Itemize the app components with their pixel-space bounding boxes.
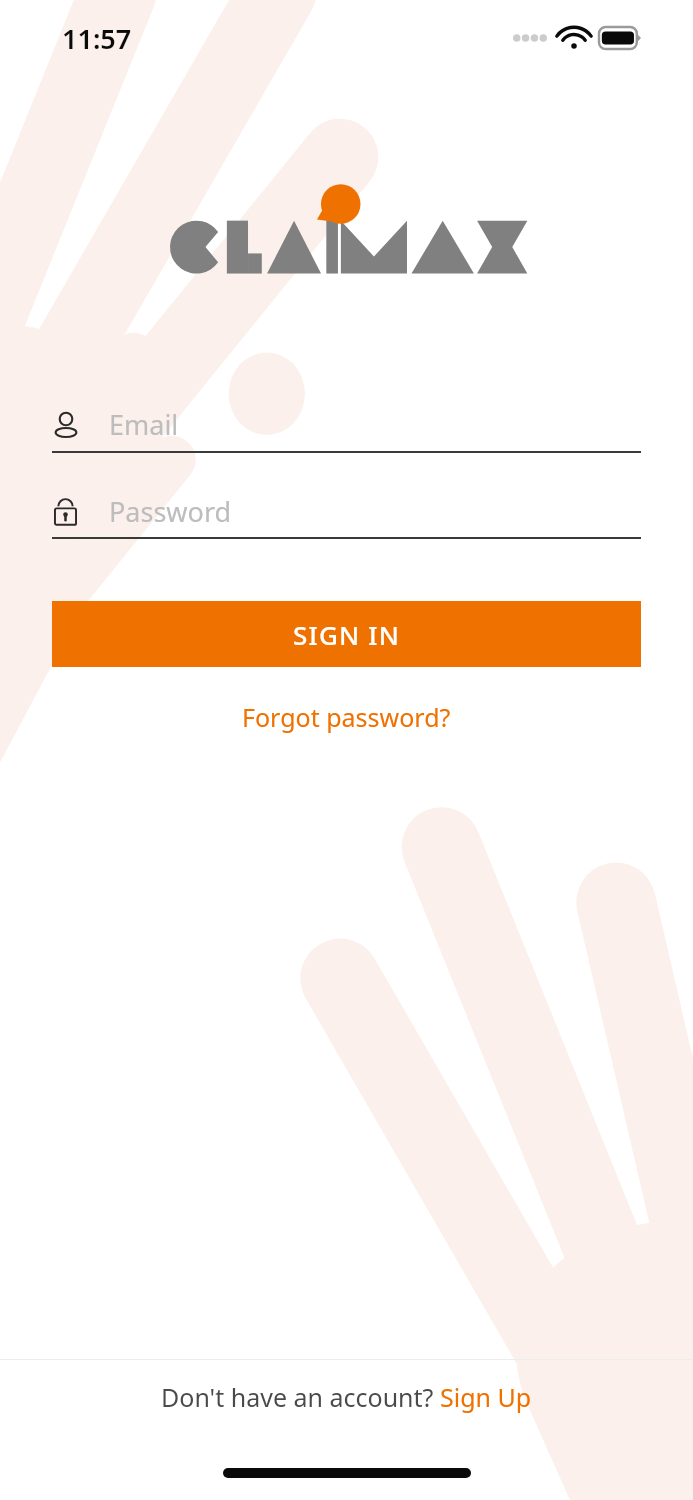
staticText: Sign Up (440, 1380, 532, 1414)
staticText: Password (109, 493, 232, 530)
staticText: Don't have an account? (161, 1380, 440, 1414)
button[interactable]: Sign Up (440, 1380, 532, 1414)
staticText: 11:57 (62, 20, 132, 57)
other: Home indicator (223, 1468, 471, 1478)
staticText: Forgot password? (242, 700, 451, 734)
staticText: Email (109, 406, 179, 443)
button[interactable]: Password (52, 486, 641, 537)
button[interactable]: Forgot password? (228, 693, 465, 741)
staticText: SIGN IN (293, 617, 401, 652)
button[interactable]: SIGN IN (52, 601, 641, 667)
button[interactable]: Email (52, 398, 641, 451)
